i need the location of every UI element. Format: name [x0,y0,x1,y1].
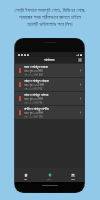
button[interactable]: মাগরিব ও সালাতুল মাগরিব [15,106,84,119]
staticText: শেষ: ৫:২৯ মিনিট AM [24,73,43,77]
button[interactable]: আরও [68,171,78,180]
staticText: অ্যাপটি ডাউনলোড করে নিন। [27,21,73,28]
staticText: ওয়াক্ত শুরু: ৪:১৫ মিনিট [24,69,43,73]
staticText: সেহরি ইফতার সময়সূচি পেতে, ভিডিওর শেষে, [14,7,86,14]
button[interactable]: কিবলা [44,171,55,180]
staticText: আরও [71,178,75,180]
staticText: কিবলা [47,178,52,180]
staticText: নামাজের [44,58,55,62]
staticText: যোহর ও সালাতুল যোহরের [24,79,49,83]
staticText: আসর ও সালাতুল আসরের [24,93,49,97]
button[interactable]: হোম [21,171,31,180]
button[interactable]: যোহর ও সালাতুল যোহরের [15,78,84,91]
staticText: ওয়াক্ত শুরু: ৬:১৫ মিনিট [24,111,43,115]
staticText: নামাজের সময় সঠিকভাবে জানতে চাইলে [19,14,81,21]
staticText: ফজর ও সালাতুল ফজরের [24,65,48,69]
staticText: হোম [24,178,28,180]
staticText: শেষ: ৪:১৫ মিনিট PM [24,87,43,91]
staticText: শেষ: ৬:১০ মিনিট PM [24,101,43,105]
staticText: শেষ: ৭:৩০ মিনিট PM [24,115,43,119]
button[interactable]: Brightness [78,58,82,62]
staticText: মাগরিব ও সালাতুল মাগরিব [24,107,49,111]
staticText: ওয়াক্ত শুরু: ৪:২০ মিনিট [24,97,43,101]
staticText: ওয়াক্ত শুরু: ১২:০৫ মিনিট [24,83,45,87]
button[interactable]: আসর ও সালাতুল আসরের [15,92,84,105]
button[interactable]: ফজর ও সালাতুল ফজরের [15,64,84,77]
